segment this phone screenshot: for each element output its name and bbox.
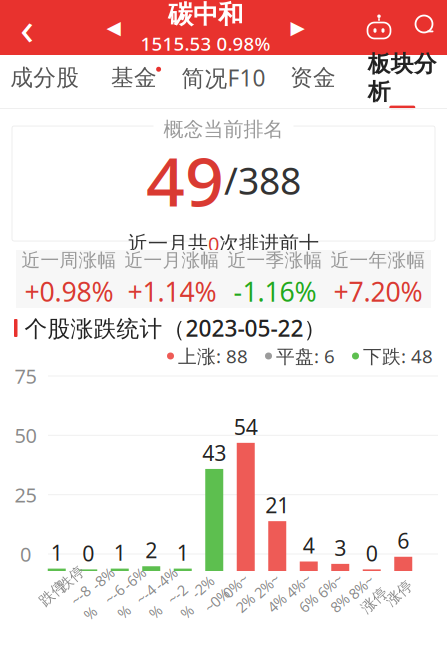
staticText: 75 xyxy=(14,363,36,389)
button[interactable]: 板块分析 xyxy=(358,55,447,108)
staticText: 6%~8% xyxy=(322,573,350,612)
staticText: 0%~2% xyxy=(228,573,256,612)
staticText: 6 xyxy=(397,526,409,555)
staticText: 基金 xyxy=(111,64,157,92)
staticText: -2%~0% xyxy=(196,573,224,612)
button[interactable]: 简况F10 xyxy=(179,55,268,108)
staticText: 1 xyxy=(51,538,63,567)
button[interactable]: 返回 xyxy=(0,0,54,55)
staticText: 50 xyxy=(14,422,36,449)
staticText: -1.16% xyxy=(233,274,316,309)
staticText: 0 xyxy=(366,539,378,567)
staticText: ‹ xyxy=(20,0,34,58)
staticText: 涨停 xyxy=(384,584,414,602)
staticText: ◀ xyxy=(106,17,120,38)
staticText: 近一季涨幅 xyxy=(227,249,322,272)
button[interactable]: 下一个 xyxy=(280,0,314,55)
staticText: 近一月共 xyxy=(128,231,208,256)
staticText: 1 xyxy=(177,538,189,567)
button[interactable]: 搜索 xyxy=(401,0,447,55)
staticText: 板块分析 xyxy=(368,50,437,106)
staticText: 资金 xyxy=(290,64,336,92)
staticText: 1515.53 0.98% xyxy=(140,31,270,56)
staticText: 0 xyxy=(208,230,219,257)
staticText: 平盘: 6 xyxy=(276,344,335,368)
staticText: +7.20% xyxy=(333,274,422,309)
staticText: 25 xyxy=(14,481,36,508)
staticText: 跌停 xyxy=(38,584,68,602)
staticText: 跌停~-8% xyxy=(69,564,99,621)
staticText: 21 xyxy=(265,491,289,519)
staticText: +1.14% xyxy=(127,274,216,309)
button[interactable]: 上一个 xyxy=(96,0,130,55)
staticText: 2 xyxy=(145,536,157,564)
staticText: 54 xyxy=(234,412,258,441)
staticText: 近一周涨幅 xyxy=(21,249,116,272)
staticText: 0 xyxy=(82,539,94,567)
staticText: 49 xyxy=(146,135,224,225)
staticText: 概念当前排名 xyxy=(163,117,283,142)
staticText: 次排进前十 xyxy=(219,231,319,256)
button[interactable]: 基金 xyxy=(89,55,179,108)
staticText: 1 xyxy=(114,538,126,567)
staticText: 近一月涨幅 xyxy=(124,249,219,272)
staticText: 2%~4% xyxy=(259,573,287,612)
staticText: /388 xyxy=(224,155,301,205)
staticText: -8%~-6% xyxy=(103,564,128,622)
staticText: 成分股 xyxy=(10,64,79,92)
staticText: 近一年涨幅 xyxy=(330,249,425,272)
staticText: 4%~6% xyxy=(291,573,319,612)
staticText: 上涨: 88 xyxy=(178,344,248,368)
staticText: -4%~-2% xyxy=(166,564,191,622)
staticText: 8%~涨停 xyxy=(353,574,383,612)
staticText: ▶ xyxy=(290,17,304,38)
button[interactable]: 成分股 xyxy=(0,55,89,108)
button[interactable]: 资金 xyxy=(268,55,358,108)
staticText: 下跌: 48 xyxy=(363,344,433,368)
staticText: 简况F10 xyxy=(181,63,265,93)
staticText: 4 xyxy=(303,531,315,559)
staticText: 43 xyxy=(202,439,226,467)
staticText: 3 xyxy=(334,533,346,562)
staticText: 个股涨跌统计（2023-05-22） xyxy=(24,313,326,343)
staticText: 0 xyxy=(20,541,31,567)
button[interactable]: 智能助手 xyxy=(357,0,401,55)
staticText: +0.98% xyxy=(24,274,113,309)
staticText: 碳中和 xyxy=(168,0,243,30)
staticText: -6%~-4% xyxy=(135,564,160,622)
